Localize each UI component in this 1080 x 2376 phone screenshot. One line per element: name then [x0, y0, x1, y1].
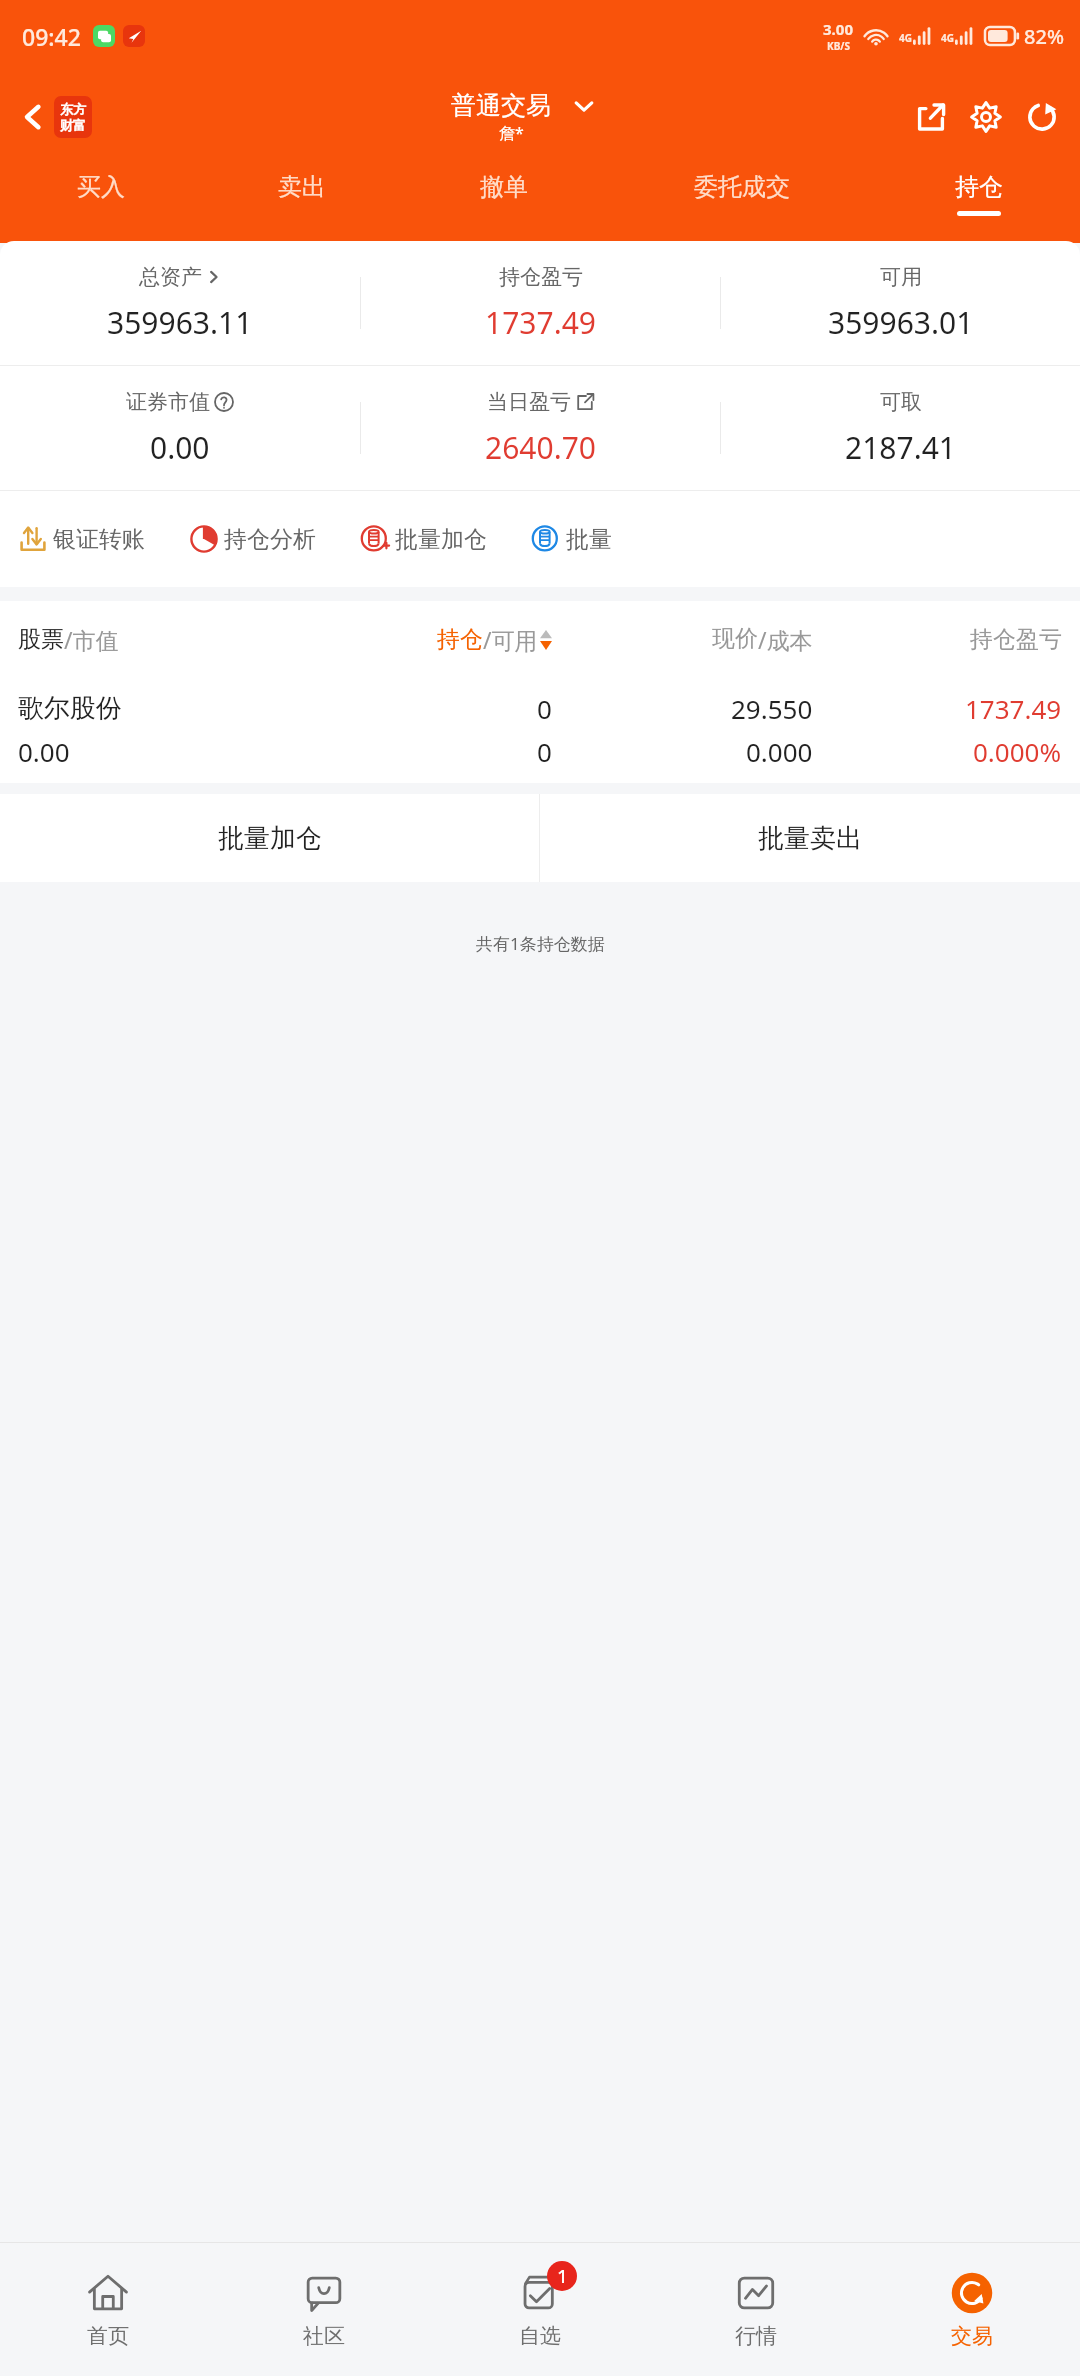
staticText: 359963.11 — [107, 302, 253, 343]
staticText: 可用 — [880, 264, 922, 290]
staticText: 现价 — [712, 624, 758, 653]
staticText: 1737.49 — [485, 302, 596, 343]
staticText: 0 — [537, 734, 552, 769]
button[interactable]: 返回 — [12, 90, 98, 144]
staticText: 持仓 — [437, 625, 483, 654]
button[interactable]: 持仓 — [303, 624, 552, 655]
staticText: 证券市值 — [126, 389, 210, 415]
button[interactable]: 行情 — [648, 2243, 864, 2376]
button[interactable]: 买入 — [0, 162, 201, 243]
button[interactable]: 银证转账 — [18, 524, 145, 554]
button[interactable]: 总资产 — [0, 241, 360, 365]
button[interactable]: 社区 — [216, 2243, 432, 2376]
staticText: 买入 — [77, 172, 125, 202]
staticText: 359963.01 — [828, 302, 974, 343]
staticText: 2640.70 — [485, 427, 596, 468]
button[interactable]: 刷新 — [1018, 93, 1066, 141]
staticText: 批量 — [566, 525, 612, 554]
button[interactable]: 证券市值 — [0, 366, 360, 490]
staticText: 持仓分析 — [224, 525, 316, 554]
staticText: 2187.41 — [845, 427, 956, 468]
button[interactable]: 持仓 — [878, 162, 1080, 243]
staticText: KB/S — [827, 39, 850, 53]
button[interactable]: 设置 — [962, 93, 1010, 141]
button[interactable]: 撤单 — [403, 162, 605, 243]
button[interactable]: 当日盈亏 — [361, 366, 720, 490]
staticText: 撤单 — [480, 172, 528, 202]
staticText: 09:42 — [22, 21, 81, 52]
staticText: /可用 — [483, 624, 538, 655]
staticText: 批量加仓 — [395, 525, 487, 554]
staticText: 东方 — [60, 101, 86, 117]
staticText: 当日盈亏 — [487, 389, 571, 415]
staticText: 批量卖出 — [758, 822, 862, 855]
staticText: 银证转账 — [53, 525, 145, 554]
staticText: 0.000 — [746, 734, 813, 769]
button[interactable]: 交易 — [864, 2243, 1080, 2376]
button[interactable]: 批量加仓 — [0, 794, 539, 882]
staticText: 29.550 — [731, 691, 813, 726]
staticText: 股票 — [18, 625, 64, 654]
staticText: 0 — [537, 691, 552, 726]
staticText: 0.00 — [18, 734, 70, 769]
staticText: 自选 — [519, 2323, 561, 2349]
staticText: 82% — [1024, 23, 1064, 50]
staticText: 共有1条持仓数据 — [476, 932, 605, 955]
staticText: 普通交易 — [451, 90, 551, 121]
staticText: 1 — [557, 2264, 568, 2289]
button[interactable]: 批量加仓 — [360, 524, 487, 554]
button[interactable]: 首页 — [0, 2243, 216, 2376]
staticText: 首页 — [87, 2323, 129, 2349]
button[interactable]: 歌尔股份 — [0, 677, 1080, 783]
staticText: 詹* — [499, 122, 524, 144]
staticText: 1737.49 — [965, 691, 1062, 726]
staticText: /成本 — [758, 624, 813, 655]
staticText: 持仓盈亏 — [970, 625, 1062, 654]
button[interactable]: 分享 — [908, 94, 954, 140]
staticText: 行情 — [735, 2323, 777, 2349]
button[interactable]: 可用 — [721, 241, 1080, 365]
button[interactable]: 批量卖出 — [540, 794, 1080, 882]
button[interactable]: 批量 — [531, 524, 612, 554]
staticText: 财富 — [60, 117, 86, 133]
button[interactable]: 1 — [432, 2243, 648, 2376]
staticText: 歌尔股份 — [18, 692, 122, 725]
staticText: 交易 — [951, 2323, 993, 2349]
button[interactable]: 卖出 — [201, 162, 403, 243]
staticText: 批量加仓 — [218, 822, 322, 855]
staticText: 4G — [941, 31, 954, 45]
button[interactable]: 委托成交 — [605, 162, 878, 243]
staticText: 卖出 — [278, 172, 326, 202]
staticText: 3.00 — [823, 19, 853, 39]
staticText: 可取 — [880, 389, 922, 415]
button[interactable]: 持仓盈亏 — [361, 241, 720, 365]
button[interactable]: 可取 — [721, 366, 1080, 490]
staticText: 持仓 — [955, 172, 1003, 202]
staticText: 总资产 — [139, 264, 202, 290]
staticText: 社区 — [303, 2323, 345, 2349]
staticText: 0.00 — [150, 427, 210, 468]
staticText: 委托成交 — [694, 172, 790, 202]
staticText: 持仓盈亏 — [499, 264, 583, 290]
button[interactable]: 持仓分析 — [189, 524, 316, 554]
staticText: 0.000% — [973, 734, 1062, 769]
staticText: 4G — [899, 31, 912, 45]
staticText: /市值 — [64, 624, 119, 655]
button[interactable]: 普通交易 — [451, 90, 597, 144]
